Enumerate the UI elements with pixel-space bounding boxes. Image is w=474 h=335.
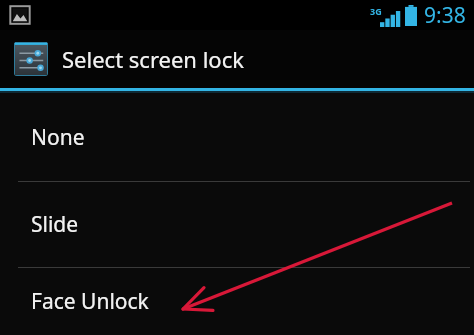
staticText: 3G — [370, 5, 382, 17]
other: Security settings — [14, 42, 48, 76]
staticText: Slide — [31, 210, 79, 239]
button[interactable]: Slide — [0, 182, 474, 267]
other: Screenshot captured — [9, 4, 31, 26]
staticText: None — [31, 123, 85, 152]
button[interactable]: None — [0, 93, 474, 181]
staticText: Select screen lock — [62, 44, 244, 74]
staticText: 9:38 — [424, 1, 466, 30]
staticText: Face Unlock — [31, 287, 149, 316]
button[interactable]: Face Unlock — [0, 268, 474, 335]
